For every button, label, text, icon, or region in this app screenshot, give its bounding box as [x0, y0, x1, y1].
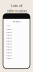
staticText: Row label: [6, 43, 12, 45]
staticText: Row label: [6, 52, 12, 54]
staticText: Row label: [6, 49, 12, 51]
staticText: Row label: [6, 58, 12, 59]
staticText: Row label: [6, 32, 12, 33]
staticText: Row label: [6, 46, 12, 48]
staticText: Information: [12, 21, 20, 23]
staticText: Row label: [6, 55, 12, 57]
staticText: Lots of: [11, 3, 22, 8]
staticText: information: [6, 8, 26, 13]
staticText: Row label: [6, 29, 12, 30]
staticText: Section: [6, 25, 11, 27]
staticText: Row label: [6, 40, 12, 42]
staticText: Row label: [6, 34, 12, 36]
staticText: Row label: [6, 37, 12, 39]
